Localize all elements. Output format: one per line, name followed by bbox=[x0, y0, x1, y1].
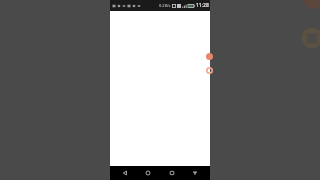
button[interactable]: Screenshot bbox=[187, 166, 203, 180]
button[interactable]: Home bbox=[140, 166, 156, 180]
button[interactable]: Secondary action bbox=[206, 67, 213, 74]
staticText: 0.2K/s bbox=[159, 3, 171, 8]
button[interactable]: Action bbox=[206, 53, 213, 60]
button[interactable]: Back bbox=[117, 166, 133, 180]
button[interactable]: Recent apps bbox=[164, 166, 180, 180]
staticText: 11:28 bbox=[196, 2, 209, 9]
